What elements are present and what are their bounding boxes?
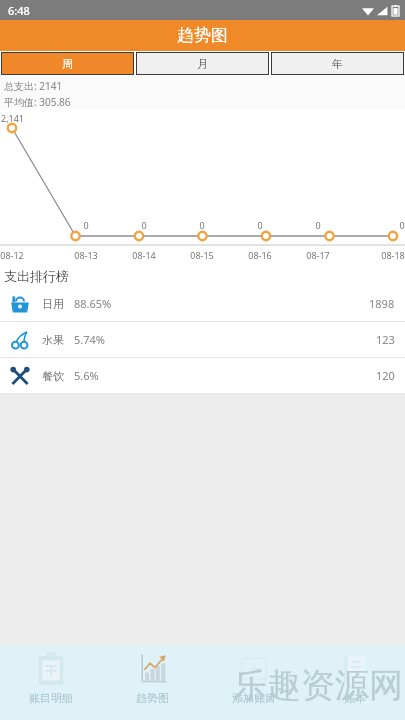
staticText: 0 [141, 219, 147, 231]
staticText: 123 [376, 332, 395, 347]
staticText: 支出排行榜 [4, 268, 69, 284]
staticText: 1898 [369, 296, 395, 311]
staticText: 年 [332, 57, 343, 71]
button[interactable]: 添加账目 [203, 645, 304, 720]
staticText: 88.65% [74, 296, 112, 311]
staticText: 日用 [42, 297, 64, 311]
staticText: 月 [197, 57, 208, 71]
staticText: 08-12 [0, 249, 24, 261]
staticText: 周 [62, 57, 73, 71]
staticText: 0 [257, 219, 263, 231]
staticText: 餐饮 [42, 369, 64, 383]
staticText: 120 [376, 368, 395, 383]
button[interactable]: 账本 [304, 645, 405, 720]
staticText: 08-18 [381, 249, 405, 261]
staticText: 5.6% [74, 368, 99, 383]
staticText: 水果 [42, 333, 64, 347]
button[interactable]: 账目明细 [0, 645, 102, 720]
staticText: 趋势图 [136, 691, 169, 705]
staticText: 平均值: 305.86 [4, 95, 71, 109]
button[interactable]: 日用 [0, 286, 405, 321]
button[interactable]: 周 [1, 52, 134, 75]
staticText: 添加账目 [232, 691, 276, 705]
staticText: 总支出: 2141 [4, 79, 63, 93]
staticText: 0 [399, 219, 405, 231]
button[interactable]: 趋势图 [102, 645, 203, 720]
staticText: 0 [83, 219, 89, 231]
staticText: 5.74% [74, 332, 105, 347]
staticText: 08-13 [74, 249, 98, 261]
staticText: 账目明细 [29, 691, 73, 705]
staticText: 6:48 [8, 3, 30, 18]
staticText: 0 [199, 219, 205, 231]
staticText: 趋势图 [177, 25, 228, 46]
staticText: 08-17 [306, 249, 330, 261]
button[interactable]: 年 [271, 52, 404, 75]
staticText: 账本 [344, 691, 366, 705]
staticText: 2,141 [1, 112, 25, 124]
staticText: 0 [315, 219, 321, 231]
button[interactable]: 水果 [0, 322, 405, 357]
staticText: 08-15 [190, 249, 214, 261]
staticText: 08-16 [248, 249, 272, 261]
button[interactable]: 餐饮 [0, 358, 405, 393]
button[interactable]: 月 [136, 52, 269, 75]
staticText: 乐趣资源网 [233, 664, 403, 707]
staticText: 08-14 [132, 249, 156, 261]
